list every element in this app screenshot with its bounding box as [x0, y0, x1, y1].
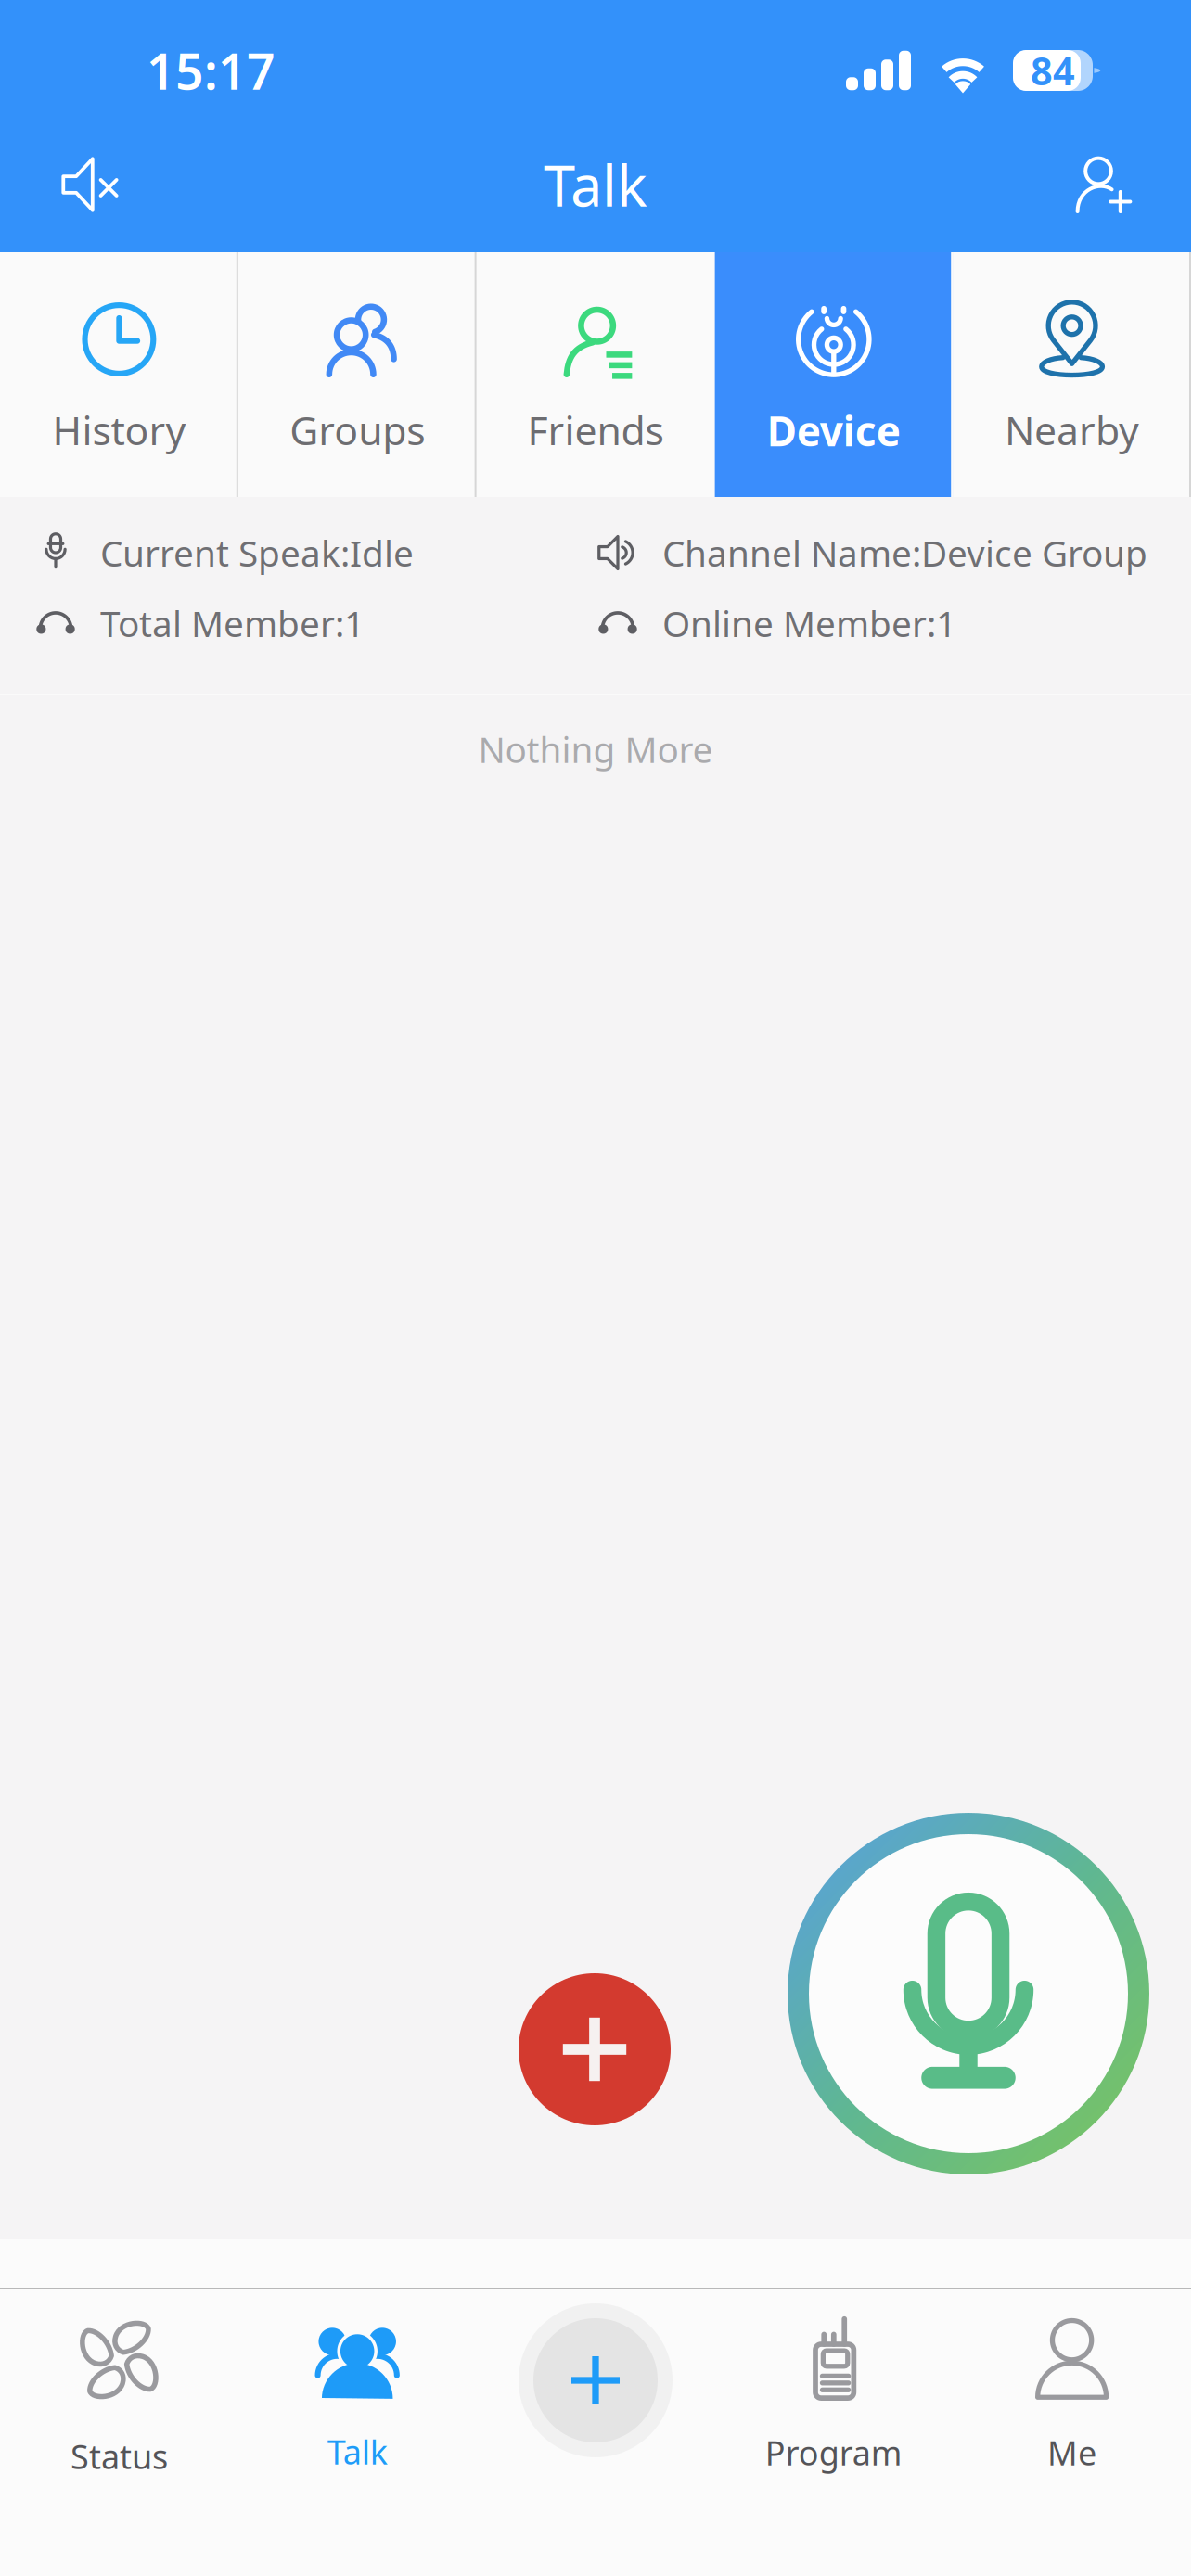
staticText: Channel Name:Device Group: [662, 529, 1147, 576]
button[interactable]: New conversation: [476, 2289, 715, 2501]
staticText: Online Member:1: [662, 599, 956, 647]
staticText: Total Member:1: [100, 599, 365, 647]
staticText: Groups: [290, 403, 425, 456]
button[interactable]: Talk: [238, 2289, 476, 2501]
staticText: Talk: [544, 147, 647, 222]
button[interactable]: Program: [715, 2289, 953, 2501]
button[interactable]: Groups: [238, 252, 476, 497]
staticText: 84: [1031, 45, 1075, 96]
button[interactable]: Device: [715, 252, 953, 497]
button[interactable]: Friends: [476, 252, 715, 497]
button[interactable]: History: [0, 252, 238, 497]
staticText: Current Speak:Idle: [100, 529, 414, 576]
button[interactable]: Me: [953, 2289, 1191, 2501]
button[interactable]: Add contact: [1048, 131, 1156, 238]
staticText: Program: [765, 2430, 902, 2475]
button[interactable]: Mute: [35, 131, 143, 238]
staticText: 15:17: [147, 38, 276, 103]
staticText: Nothing More: [478, 725, 713, 773]
staticText: Device: [767, 403, 901, 458]
staticText: Nearby: [1005, 403, 1139, 456]
staticText: History: [52, 403, 186, 456]
staticText: Friends: [527, 403, 664, 456]
button[interactable]: Nearby: [953, 252, 1191, 497]
button[interactable]: Push to talk: [788, 1813, 1149, 2174]
staticText: Me: [1047, 2430, 1097, 2475]
staticText: Status: [70, 2434, 168, 2478]
button[interactable]: Add member: [519, 1973, 671, 2125]
button[interactable]: Status: [0, 2289, 238, 2501]
staticText: Talk: [327, 2429, 387, 2474]
